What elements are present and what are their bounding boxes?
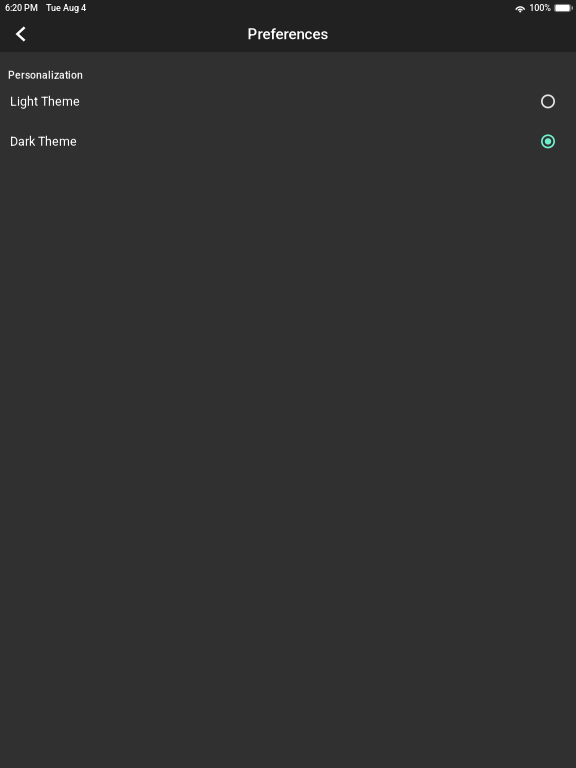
staticText: Personalization [8, 69, 83, 81]
staticText: Light Theme [10, 94, 80, 109]
staticText: Dark Theme [10, 134, 77, 149]
button[interactable]: Dark Theme [0, 121, 576, 161]
button[interactable]: Light Theme [0, 81, 576, 121]
staticText: Preferences [247, 25, 328, 43]
staticText: 6:20 PM [5, 3, 38, 13]
button[interactable]: Back [6, 17, 36, 51]
staticText: Tue Aug 4 [46, 3, 86, 13]
staticText: 100% [529, 3, 551, 13]
